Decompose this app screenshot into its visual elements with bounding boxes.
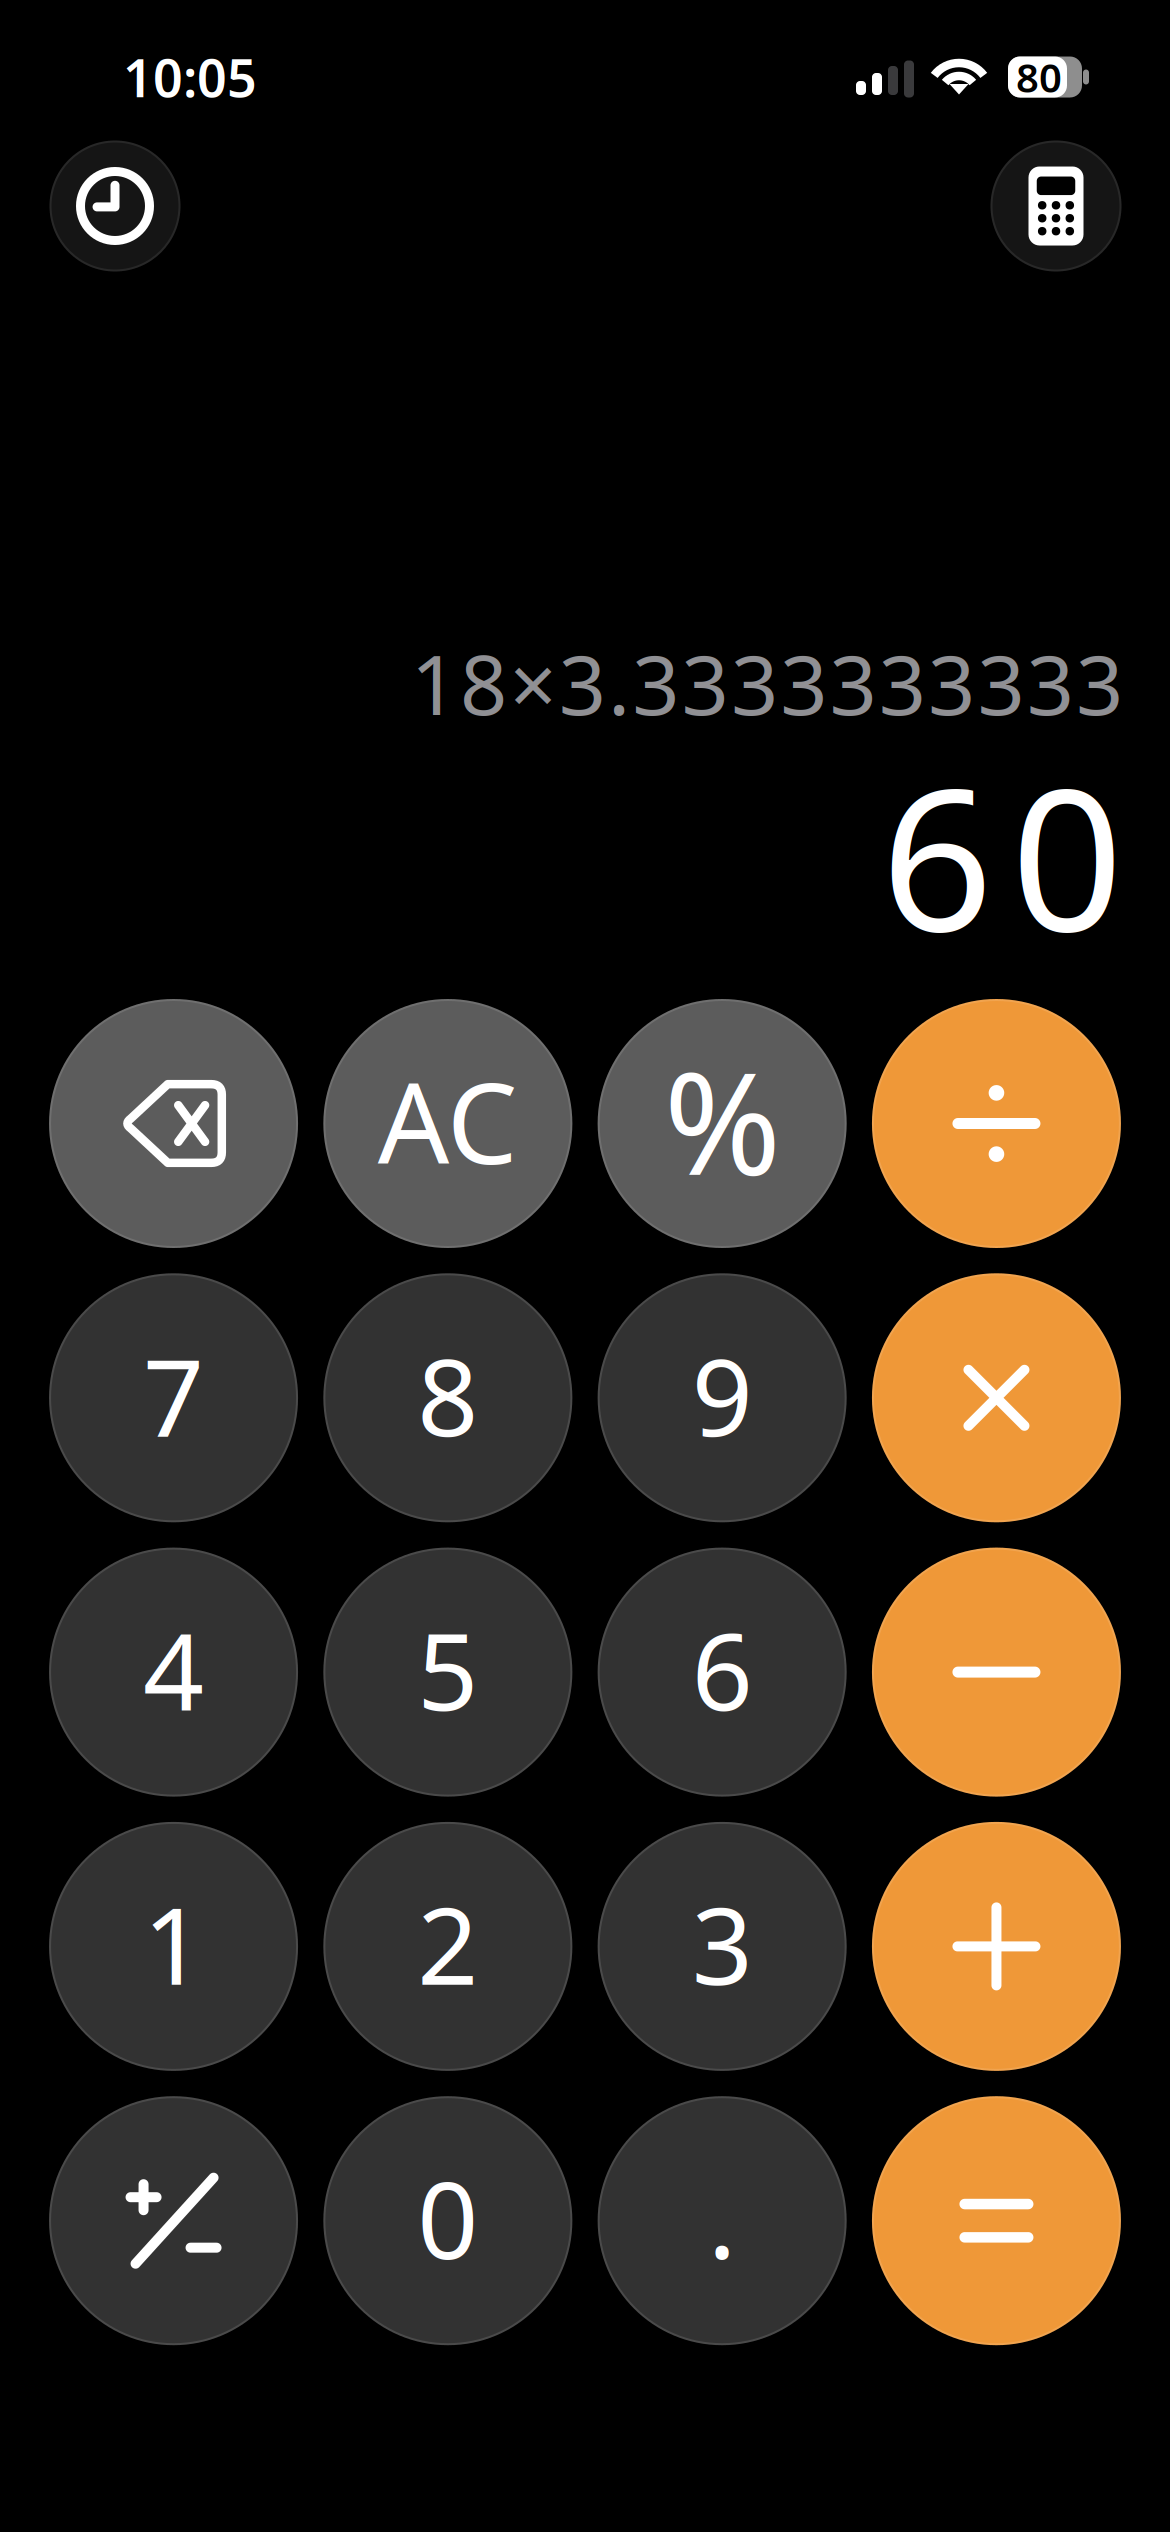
button[interactable]: Multiply bbox=[872, 1273, 1121, 1522]
button[interactable]: Decimal point bbox=[598, 2096, 847, 2345]
staticText: 3 bbox=[692, 1873, 753, 2014]
staticText: 8 bbox=[417, 1324, 478, 1466]
staticText: 7 bbox=[143, 1324, 204, 1466]
button[interactable]: Percent bbox=[598, 999, 847, 1248]
button[interactable]: History bbox=[49, 140, 180, 271]
button[interactable]: Divide bbox=[872, 999, 1121, 1248]
button[interactable]: 9 bbox=[598, 1273, 847, 1522]
button[interactable]: All clear bbox=[323, 999, 572, 1248]
button[interactable]: Equals bbox=[872, 2096, 1121, 2345]
staticText: 9 bbox=[692, 1324, 753, 1466]
button[interactable]: Add bbox=[872, 1822, 1121, 2071]
staticText: 4 bbox=[143, 1598, 204, 1740]
button[interactable]: 4 bbox=[49, 1548, 298, 1797]
staticText: 60 bbox=[881, 725, 1123, 985]
button[interactable]: 3 bbox=[598, 1822, 847, 2071]
button[interactable]: 1 bbox=[49, 1822, 298, 2071]
staticText: 10:05 bbox=[123, 42, 257, 112]
button[interactable]: Delete bbox=[49, 999, 298, 1248]
button[interactable]: 2 bbox=[323, 1822, 572, 2071]
staticText: 0 bbox=[417, 2147, 478, 2288]
button[interactable]: Subtract bbox=[872, 1548, 1121, 1797]
staticText: . bbox=[708, 2147, 737, 2288]
staticText: 18×3.3333333333 bbox=[411, 628, 1123, 738]
button[interactable]: 0 bbox=[323, 2096, 572, 2345]
staticText: 5 bbox=[417, 1598, 478, 1740]
button[interactable]: 6 bbox=[598, 1548, 847, 1797]
button[interactable]: 8 bbox=[323, 1273, 572, 1522]
button[interactable]: Toggle sign bbox=[49, 2096, 298, 2345]
button[interactable]: 5 bbox=[323, 1548, 572, 1797]
staticText: % bbox=[664, 1027, 781, 1214]
button[interactable]: 7 bbox=[49, 1273, 298, 1522]
staticText: 80 bbox=[1016, 50, 1062, 103]
staticText: 1 bbox=[143, 1873, 204, 2014]
staticText: 2 bbox=[417, 1873, 478, 2014]
staticText: 6 bbox=[692, 1598, 753, 1740]
staticText: AC bbox=[378, 1046, 518, 1195]
button[interactable]: Scientific calculator bbox=[990, 140, 1121, 271]
